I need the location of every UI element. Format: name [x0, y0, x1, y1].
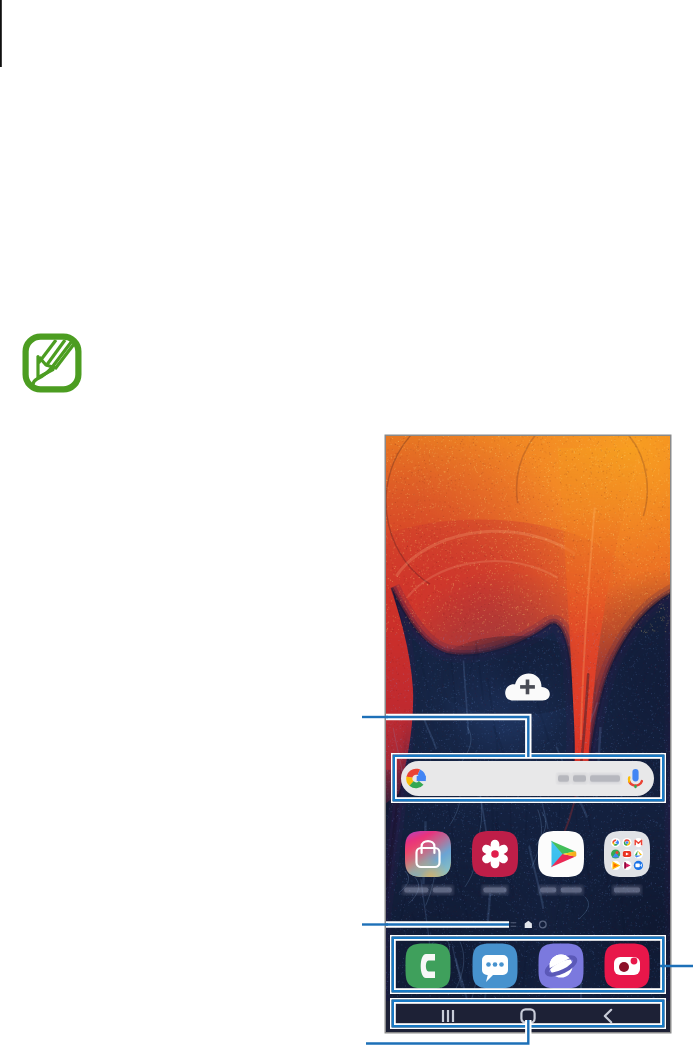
button[interactable]: Messages: [472, 943, 518, 989]
button[interactable]: Home: [500, 1001, 556, 1032]
button[interactable]: Play Store: [538, 831, 584, 877]
button[interactable]: Back: [580, 1001, 636, 1032]
button[interactable]: Home screen pages: [506, 916, 552, 933]
button[interactable]: Add widget: [505, 673, 551, 707]
button[interactable]: Recents: [420, 1001, 476, 1032]
button[interactable]: Camera: [604, 943, 650, 989]
button[interactable]: Phone: [405, 943, 451, 989]
button[interactable]: Galaxy Apps: [405, 831, 451, 877]
button[interactable]: Google folder: [604, 831, 650, 877]
button[interactable]: Internet: [538, 943, 584, 989]
button[interactable]: Gallery: [472, 831, 518, 877]
button[interactable]: Search with Google: [401, 761, 654, 796]
